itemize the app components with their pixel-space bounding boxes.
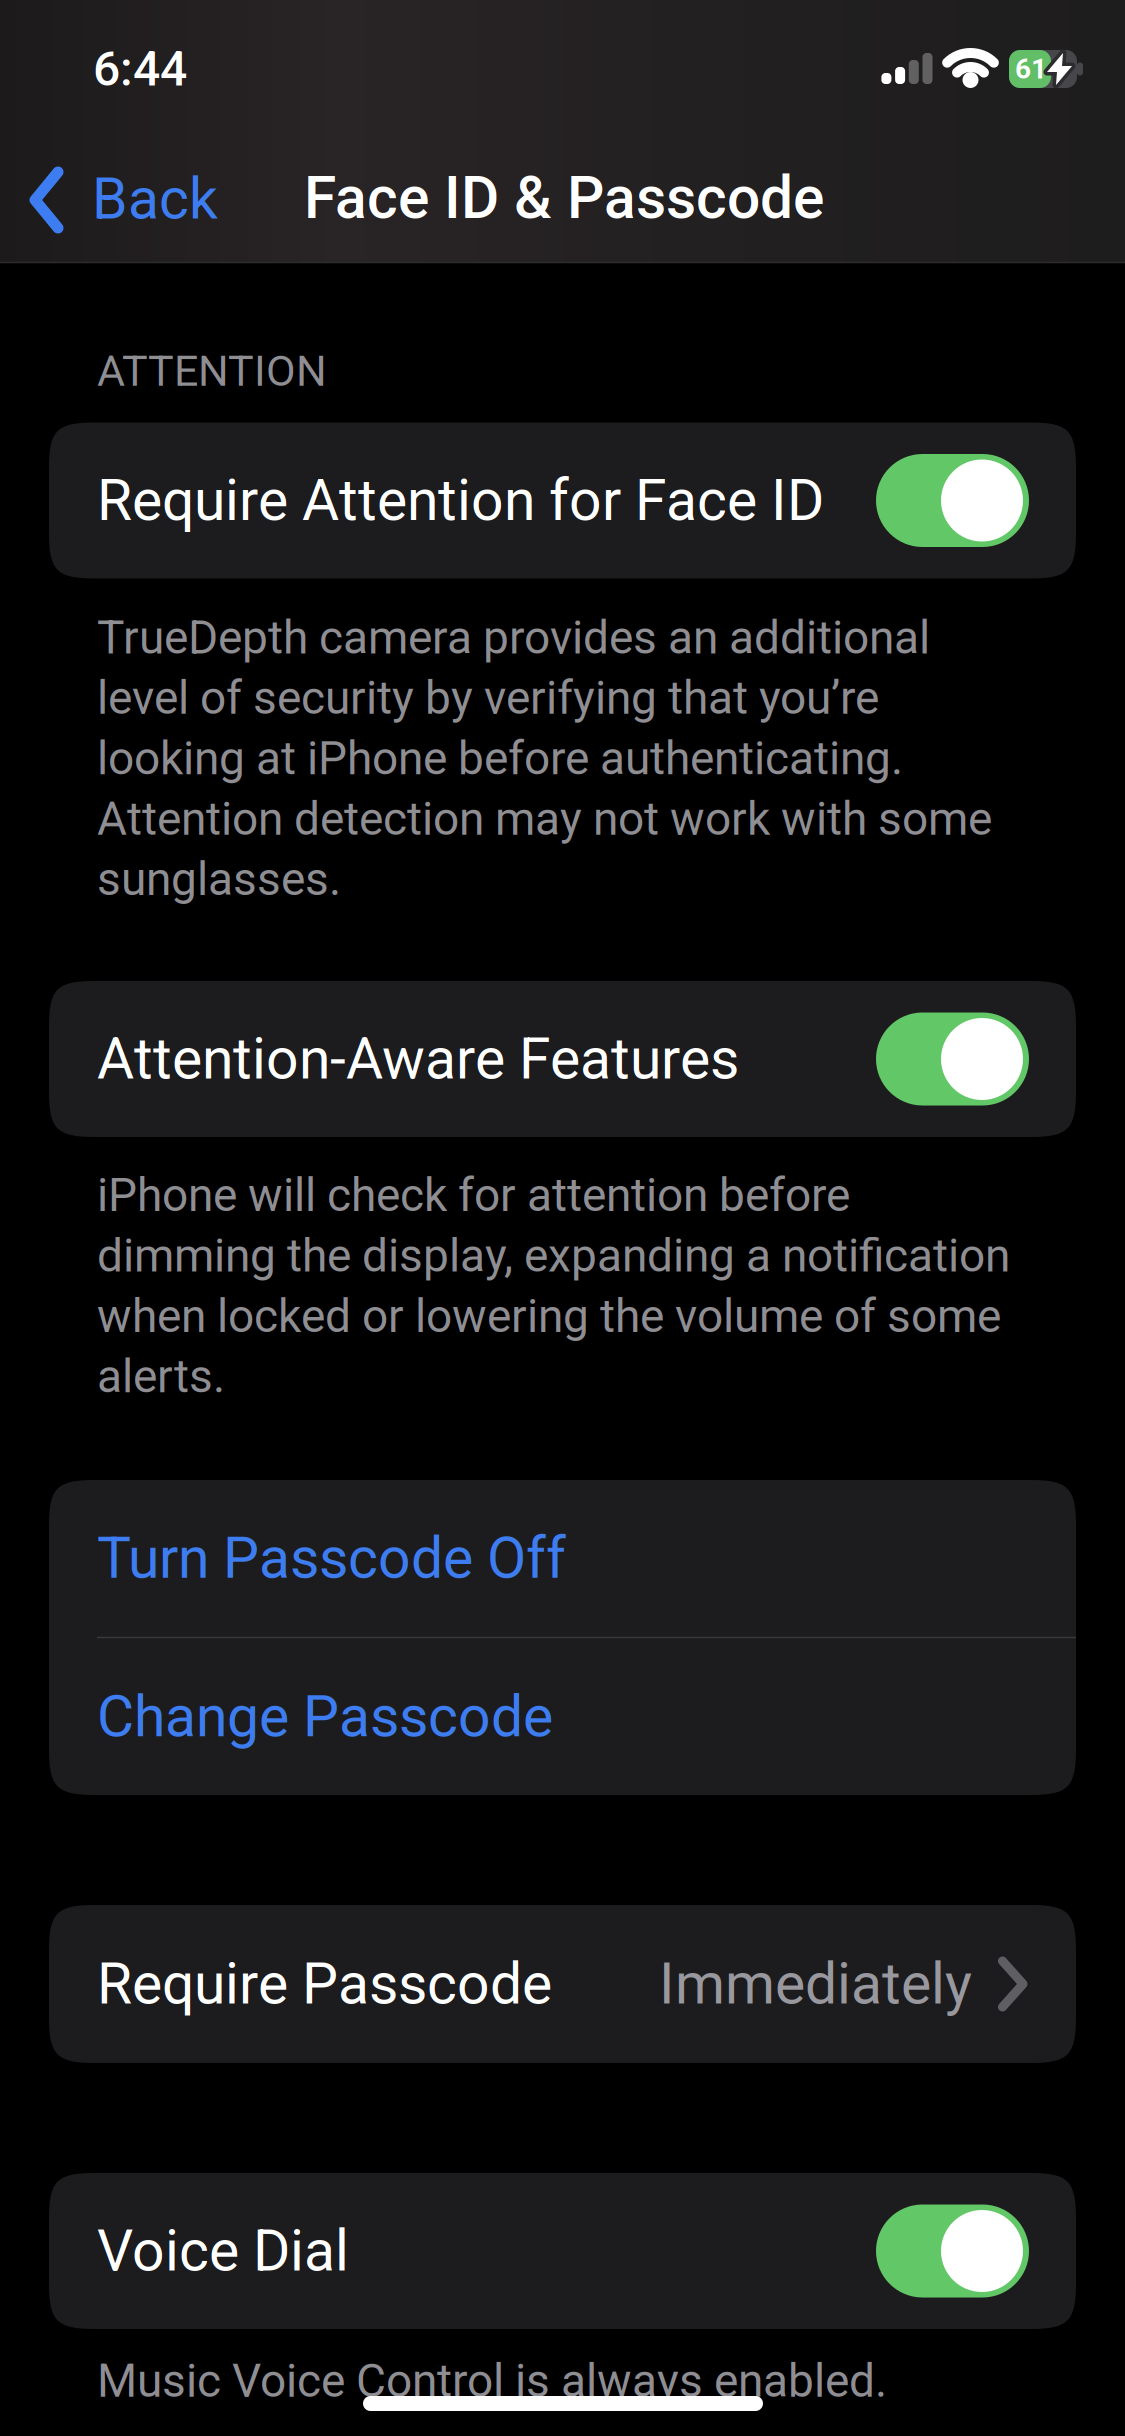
staticText: 6:44 [93,41,187,97]
button[interactable]: Require Attention for Face ID [49,422,1076,578]
staticText: Immediately [659,1951,972,2017]
staticText: Face ID & Passcode [304,164,824,232]
staticText: iPhone will check for attention before d… [97,1168,1010,1403]
button[interactable]: Voice Dial [49,2173,1076,2329]
staticText: 61 [1015,53,1047,85]
staticText: Require Passcode [97,1951,552,2017]
button[interactable]: Back [92,144,292,254]
button[interactable]: Turn Passcode Off [49,1480,1076,1637]
button[interactable]: Require Passcode [49,1905,1076,2063]
staticText: Voice Dial [97,2218,349,2284]
staticText: ATTENTION [97,346,327,396]
staticText: Back [92,166,218,232]
staticText: Attention-Aware Features [97,1026,739,1092]
staticText: TrueDepth camera provides an additional … [97,611,992,906]
staticText: Require Attention for Face ID [97,467,824,534]
staticText: Music Voice Control is always enabled. [97,2354,887,2408]
staticText: Change Passcode [97,1683,553,1750]
staticText: Turn Passcode Off [97,1525,566,1592]
button[interactable]: Attention-Aware Features [49,981,1076,1137]
button[interactable]: Change Passcode [49,1638,1076,1795]
